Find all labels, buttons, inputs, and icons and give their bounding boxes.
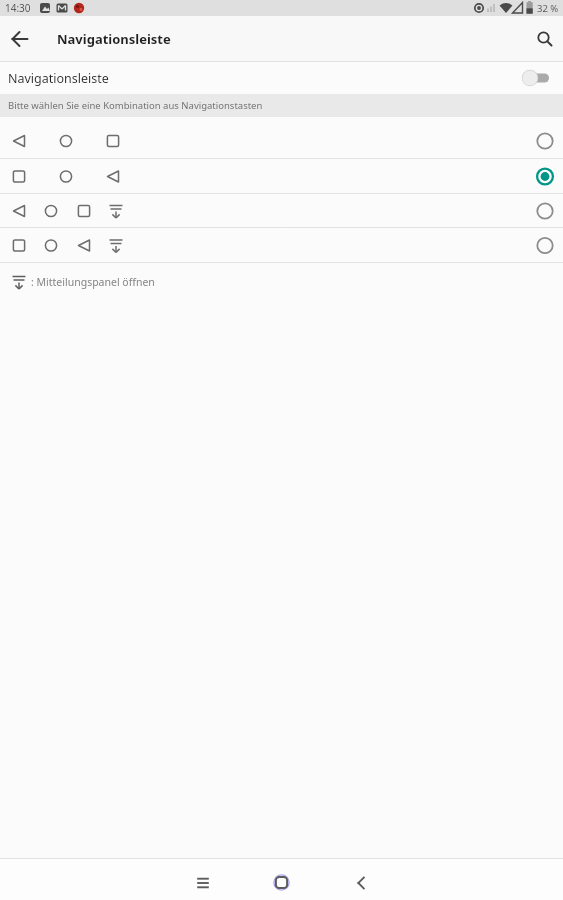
button[interactable] bbox=[0, 159, 563, 194]
button[interactable] bbox=[529, 23, 561, 55]
staticText: : Mitteilungspanel öffnen bbox=[31, 275, 155, 289]
button[interactable] bbox=[0, 194, 563, 228]
button[interactable] bbox=[187, 867, 218, 898]
staticText: 14:30 bbox=[5, 1, 31, 15]
staticText: Bitte wählen Sie eine Kombination aus Na… bbox=[8, 99, 263, 112]
button[interactable] bbox=[0, 117, 563, 159]
button[interactable] bbox=[0, 228, 563, 263]
staticText: Navigationsleiste bbox=[57, 30, 171, 48]
staticText: 32 % bbox=[537, 2, 559, 15]
staticText: Navigationsleiste bbox=[8, 70, 109, 87]
button[interactable]: Navigationsleiste bbox=[0, 62, 563, 94]
button[interactable] bbox=[345, 867, 376, 898]
button[interactable] bbox=[266, 867, 297, 898]
button[interactable] bbox=[4, 23, 36, 55]
